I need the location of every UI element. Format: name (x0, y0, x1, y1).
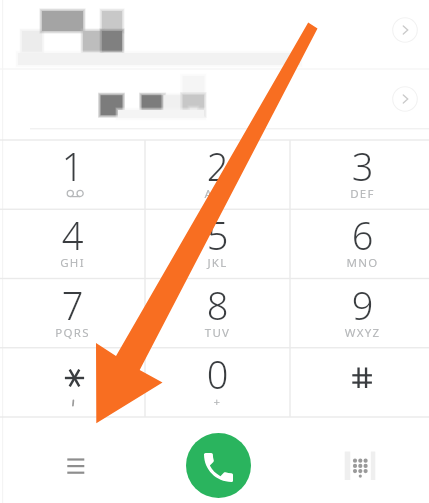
staticText: MNO (293, 255, 429, 271)
button[interactable]: 5 (145, 209, 290, 278)
staticText: JKL (145, 255, 290, 271)
button[interactable]: 6 (290, 209, 429, 278)
button[interactable]: Dialpad (340, 446, 380, 484)
button[interactable]: Call history (58, 447, 94, 483)
staticText: WXYZ (293, 325, 429, 341)
staticText: 9 (293, 279, 429, 331)
staticText: PQRS (0, 325, 145, 341)
staticText: 2 (145, 140, 290, 192)
button[interactable]: 7 (0, 279, 145, 348)
staticText: DEF (293, 186, 429, 202)
button[interactable] (290, 348, 429, 417)
button[interactable]: 0 (145, 348, 290, 417)
staticText: 7 (0, 279, 145, 331)
button[interactable]: Open contact (389, 14, 421, 46)
staticText: + (145, 394, 290, 410)
button[interactable]: Open contact (389, 83, 421, 115)
staticText: 8 (145, 279, 290, 331)
button[interactable] (0, 0, 429, 64)
staticText: 1 (0, 140, 145, 192)
button[interactable]: 3 (290, 140, 429, 209)
button[interactable]: 4 (0, 209, 145, 278)
button[interactable]: 2 (145, 140, 290, 209)
staticText: 5 (145, 209, 290, 261)
staticText: 3 (293, 140, 429, 192)
button[interactable] (0, 69, 429, 128)
button[interactable]: 1 (0, 140, 145, 209)
staticText: 4 (0, 209, 145, 261)
staticText: GHI (0, 255, 145, 271)
button[interactable] (0, 348, 145, 417)
staticText: 0 (145, 348, 290, 400)
staticText: 6 (293, 209, 429, 261)
button[interactable]: 8 (145, 279, 290, 348)
staticText: ABC (145, 186, 290, 202)
staticText: TUV (145, 325, 290, 341)
button[interactable]: Call (186, 433, 251, 498)
button[interactable]: 9 (290, 279, 429, 348)
